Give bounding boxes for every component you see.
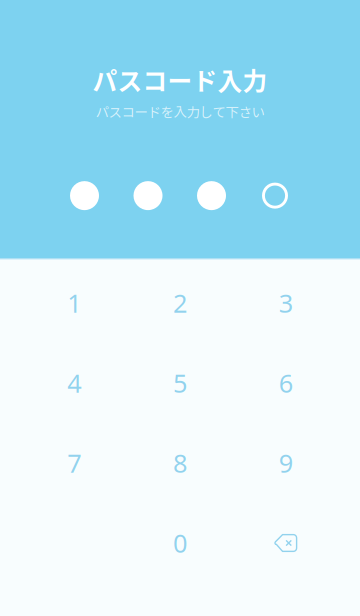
staticText: 7 [67, 446, 81, 480]
staticText: 6 [279, 366, 293, 400]
button[interactable]: 2 [135, 263, 225, 343]
staticText: 0 [173, 526, 187, 560]
staticText: 1 [67, 286, 81, 320]
button[interactable]: 5 [135, 343, 225, 423]
staticText: 5 [173, 366, 187, 400]
button[interactable]: 4 [29, 343, 119, 423]
staticText: 4 [67, 366, 81, 400]
button[interactable]: 3 [241, 263, 331, 343]
button[interactable]: 1 [29, 263, 119, 343]
staticText: パスコードを入力して下さい [95, 102, 264, 121]
button[interactable]: 7 [29, 423, 119, 503]
staticText: 2 [173, 286, 187, 320]
staticText: パスコード入力 [92, 62, 267, 98]
staticText: 3 [279, 286, 293, 320]
button[interactable]: 9 [241, 423, 331, 503]
button[interactable]: 0 [135, 503, 225, 583]
staticText: 9 [279, 446, 293, 480]
button[interactable]: Delete [241, 503, 331, 583]
staticText: 8 [173, 446, 187, 480]
button[interactable]: 6 [241, 343, 331, 423]
button[interactable]: 8 [135, 423, 225, 503]
